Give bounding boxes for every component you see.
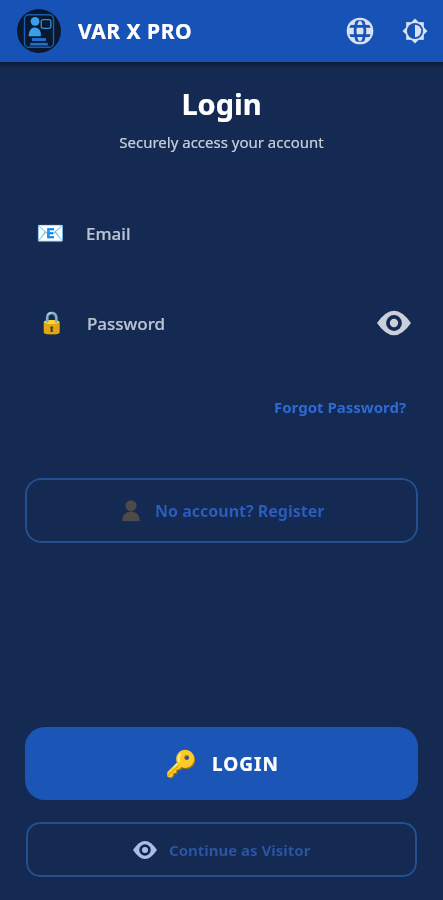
- staticText: 🔑: [165, 749, 198, 779]
- staticText: 🔒: [38, 310, 66, 336]
- staticText: Email: [86, 222, 131, 245]
- button[interactable]: No account? Register: [25, 478, 418, 543]
- staticText: LOGIN: [212, 751, 279, 777]
- staticText: Securely access your account: [0, 132, 443, 152]
- button[interactable]: Forgot Password?: [274, 397, 407, 417]
- button[interactable]: 📧: [36, 207, 411, 259]
- staticText: Continue as Visitor: [169, 840, 311, 860]
- staticText: VAR X PRO: [78, 17, 193, 46]
- button[interactable]: [347, 18, 373, 44]
- button[interactable]: [402, 18, 428, 44]
- staticText: Login: [0, 84, 443, 123]
- button[interactable]: Continue as Visitor: [26, 822, 417, 877]
- button[interactable]: 🔑: [25, 727, 418, 800]
- button[interactable]: 🔒: [38, 297, 411, 349]
- staticText: No account? Register: [155, 500, 325, 522]
- staticText: 📧: [36, 220, 65, 247]
- staticText: Password: [87, 312, 166, 335]
